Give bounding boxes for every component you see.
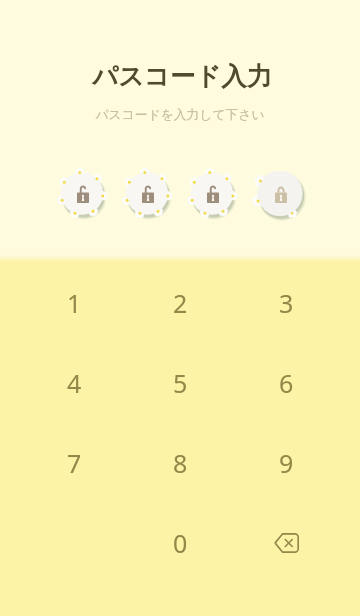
staticText: 4 [67,366,82,400]
staticText: 7 [67,446,82,480]
button[interactable]: 4 [21,343,127,423]
staticText: 9 [279,446,294,480]
staticText: パスコード入力 [92,61,272,93]
button[interactable]: 6 [233,343,339,423]
staticText: 6 [279,366,294,400]
staticText: 2 [173,286,188,320]
staticText: 0 [173,526,188,560]
staticText: 3 [279,286,294,320]
staticText: 8 [173,446,188,480]
button[interactable]: 7 [21,423,127,503]
staticText: 5 [173,366,188,400]
button[interactable]: 5 [127,343,233,423]
button[interactable]: 8 [127,423,233,503]
button[interactable]: 0 [127,503,233,583]
staticText: パスコードを入力して下さい [95,107,265,123]
button[interactable]: 3 [233,263,339,343]
button[interactable]: 1 [21,263,127,343]
button[interactable]: 2 [127,263,233,343]
button[interactable]: Delete last digit [233,503,339,583]
staticText: 1 [67,286,82,320]
button[interactable]: 9 [233,423,339,503]
